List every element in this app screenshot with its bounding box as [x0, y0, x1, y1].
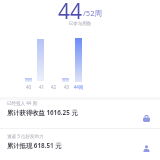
staticText: 43 — [59, 84, 74, 90]
other: Friends — [143, 145, 150, 152]
button[interactable]: 已经投入 44 周 — [0, 96, 160, 125]
staticText: 40 — [21, 84, 36, 90]
other: Earnings — [143, 115, 150, 122]
staticText: 累计抵现 618.51 元 — [7, 141, 62, 150]
staticText: 42 — [46, 84, 61, 90]
staticText: 已经投入 44 周 — [7, 100, 37, 106]
staticText: 44周 — [71, 84, 86, 90]
staticText: 41 — [34, 84, 49, 90]
staticText: 44 — [58, 0, 83, 26]
staticText: 已参与周数 — [0, 21, 160, 27]
button[interactable]: 邀请 3 位好友助力 — [0, 129, 160, 158]
staticText: 邀请 3 位好友助力 — [7, 133, 44, 139]
staticText: /52周 — [83, 8, 103, 18]
staticText: 累计获得收益 1616.25 元 — [7, 108, 78, 117]
